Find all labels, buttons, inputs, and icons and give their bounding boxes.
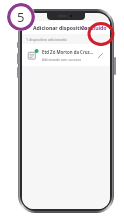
staticText: 1 dispositivo adicionado: [26, 37, 67, 42]
staticText: 5: [17, 8, 25, 26]
staticText: Etd Zó Morton da Cruz…: [42, 49, 94, 55]
staticText: Concluído: [81, 24, 107, 31]
button[interactable]: Editar: [96, 51, 105, 60]
button[interactable]: Etapa 5: [7, 3, 35, 31]
staticText: Adicionado com sucesso: [42, 57, 81, 62]
staticText: Adicionar dispositivo: [33, 24, 88, 31]
button[interactable]: Concluído: [79, 23, 109, 32]
button[interactable]: Etd Zó Morton da Cruz…: [22, 44, 110, 66]
